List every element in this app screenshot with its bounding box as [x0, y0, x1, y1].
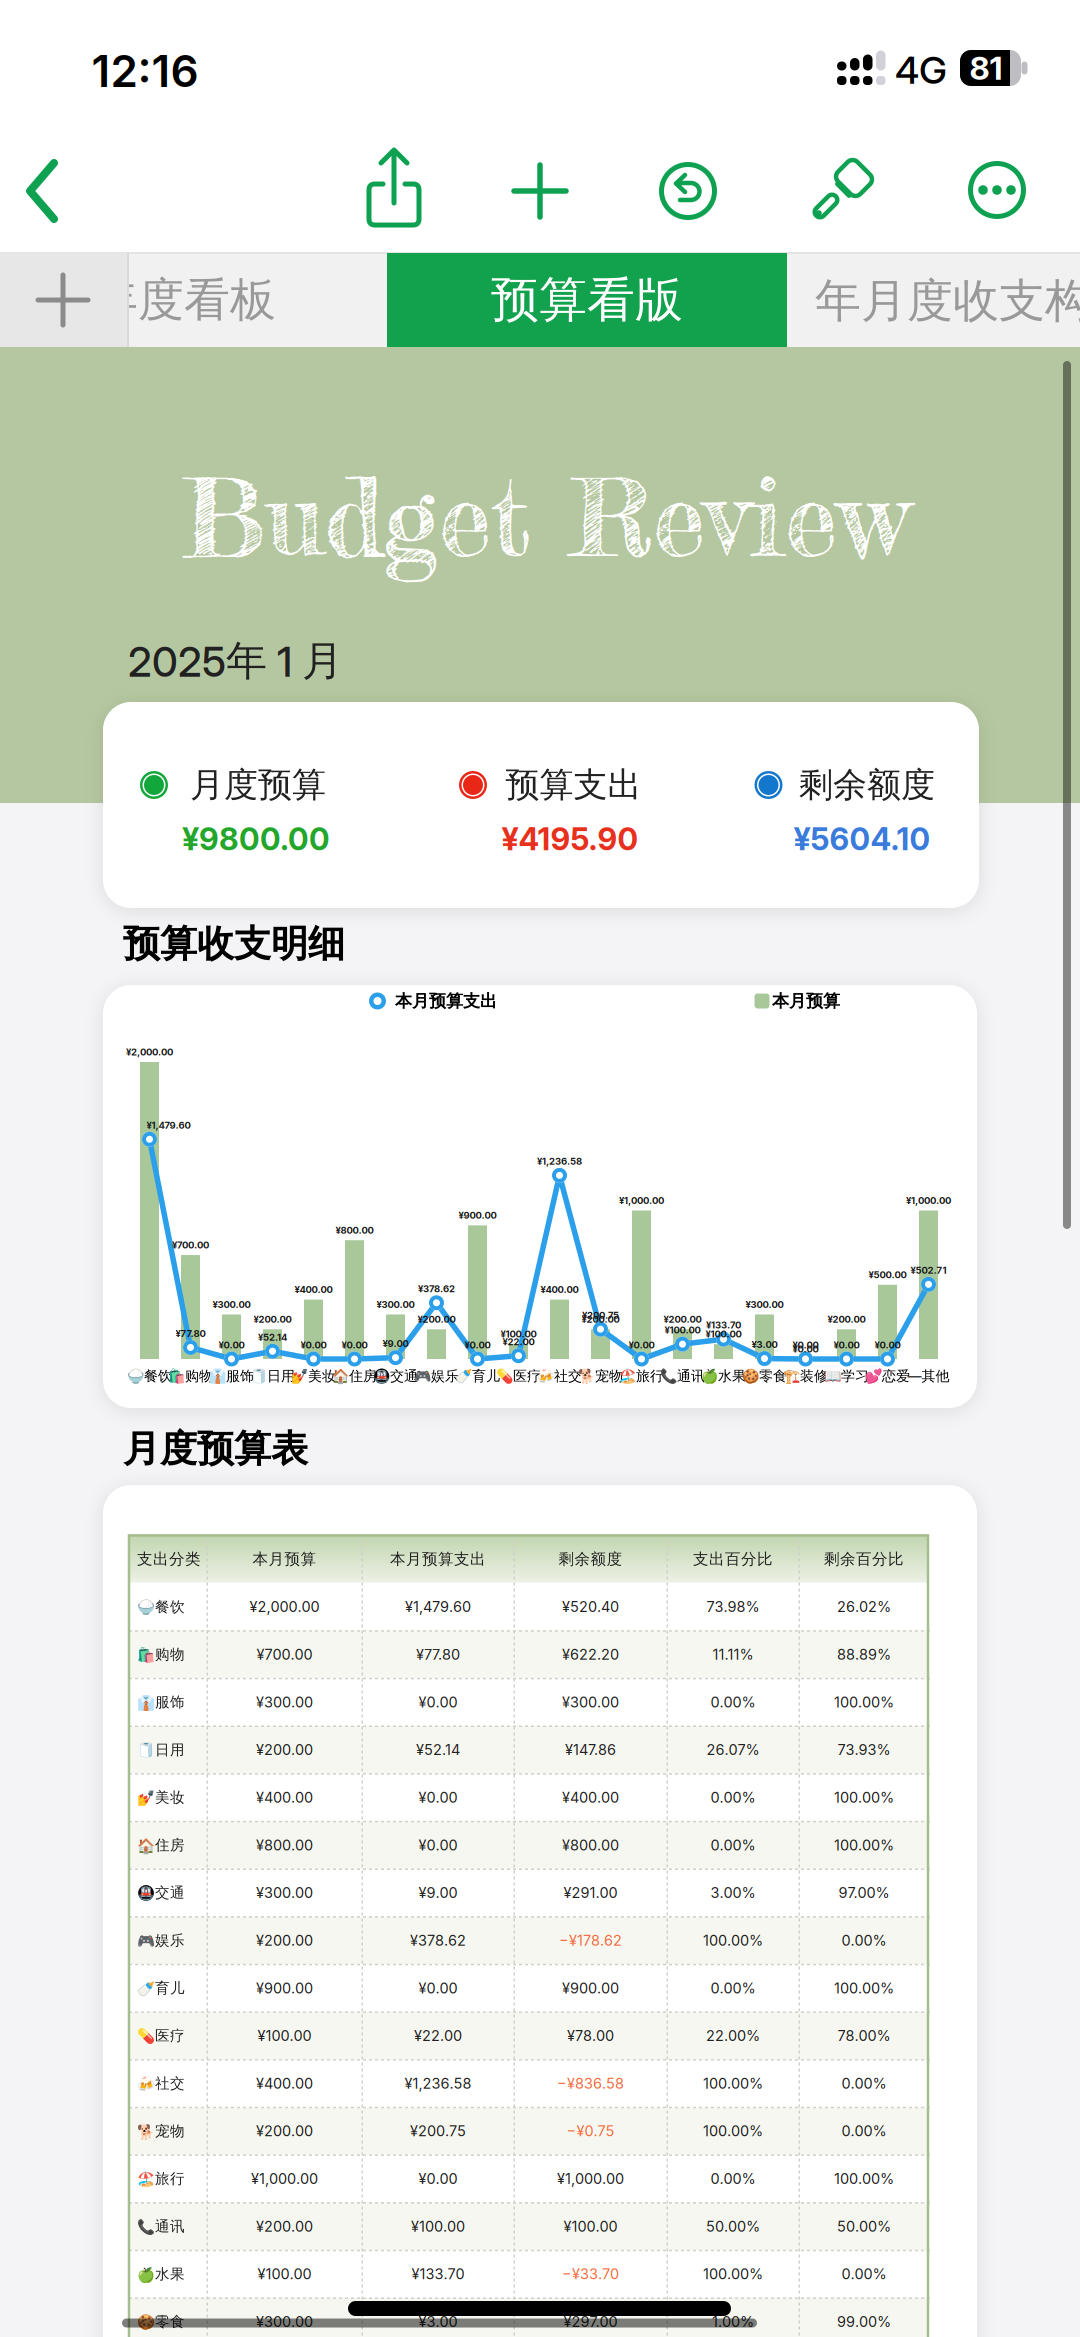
button[interactable]	[968, 161, 1026, 219]
button[interactable]	[811, 158, 875, 222]
staticText: ¥200.00	[256, 2218, 313, 2235]
staticText: 🍪零食	[742, 1367, 787, 1385]
staticText: 100.00%	[703, 1932, 763, 1949]
staticText: 剩余额度	[799, 764, 935, 806]
staticText: 剩余百分比	[824, 1549, 904, 1569]
staticText: 🚇交通	[373, 1367, 418, 1385]
staticText: ¥133.70	[411, 2265, 464, 2283]
staticText: 💅美妆	[291, 1367, 336, 1385]
button[interactable]	[659, 162, 717, 220]
staticText: ¥100.00	[563, 2218, 617, 2235]
staticText: ¥9.00	[418, 1884, 457, 1901]
staticText: ¥200.00	[827, 1314, 865, 1325]
staticText: —其他	[907, 1367, 949, 1385]
button[interactable]: 年度看板	[126, 253, 387, 347]
staticText: ¥400.00	[256, 1789, 313, 1806]
staticText: 3.00%	[710, 1884, 755, 1901]
staticText: ¥9.00	[382, 1338, 408, 1349]
staticText: 🛍️购物	[137, 1645, 185, 1664]
staticText: 81	[969, 49, 1002, 87]
staticText: ¥22.00	[414, 2027, 462, 2044]
staticText: ¥78.00	[567, 2027, 614, 2044]
staticText: 支出分类	[137, 1549, 201, 1569]
staticText: 50.00%	[837, 2218, 891, 2235]
staticText: 🧻日用	[250, 1367, 295, 1385]
staticText: ¥378.62	[418, 1283, 455, 1294]
staticText: 💊医疗	[496, 1367, 541, 1385]
staticText: 剩余额度	[558, 1549, 622, 1569]
staticText: 🧻日用	[137, 1741, 185, 1759]
staticText: ¥300.00	[212, 1299, 250, 1310]
staticText: ¥0.00	[418, 1693, 457, 1711]
staticText: 预算支出	[505, 764, 641, 806]
staticText: 🍏水果	[137, 2265, 185, 2283]
staticText: 预算收支明细	[123, 921, 345, 967]
staticText: ¥5604.10	[793, 820, 930, 858]
staticText: ¥800.00	[562, 1836, 619, 1854]
staticText: 🐕宠物	[137, 2122, 185, 2140]
staticText: 💊医疗	[137, 2027, 185, 2045]
button[interactable]	[0, 253, 127, 347]
staticText: ¥900.00	[458, 1210, 496, 1221]
staticText: 本月预算	[772, 990, 840, 1012]
button[interactable]	[510, 161, 570, 221]
staticText: 🏗️装修	[783, 1367, 828, 1385]
staticText: ¥100.00	[500, 1328, 536, 1340]
staticText: 0.00%	[710, 1836, 755, 1854]
staticText: ¥0.00	[792, 1339, 818, 1351]
staticText: 11.11%	[712, 1646, 753, 1663]
staticText: 🍪零食	[137, 2313, 185, 2331]
staticText: ¥1,479.60	[405, 1598, 471, 1616]
staticText: 73.98%	[706, 1598, 759, 1616]
staticText: 0.00%	[710, 2170, 755, 2187]
staticText: 📞通讯	[137, 2217, 185, 2236]
staticText: 12:16	[91, 44, 198, 98]
staticText: ¥900.00	[256, 1979, 313, 1997]
staticText: −¥33.70	[562, 2265, 619, 2283]
staticText: 🍚餐饮	[137, 1598, 185, 1616]
staticText: 22.00%	[706, 2027, 760, 2044]
staticText: 0.00%	[841, 1932, 886, 1949]
staticText: 年月度收支构	[815, 272, 1080, 330]
button[interactable]: 预算看版	[387, 253, 787, 347]
staticText: ¥200.75	[410, 2122, 466, 2140]
staticText: ¥520.40	[562, 1598, 619, 1616]
staticText: 🎮娱乐	[414, 1367, 459, 1385]
staticText: 本月预算	[252, 1549, 316, 1569]
staticText: 100.00%	[834, 1789, 894, 1806]
staticText: ¥147.86	[565, 1741, 616, 1758]
staticText: ¥22.00	[502, 1336, 534, 1347]
staticText: ¥200.00	[663, 1314, 701, 1325]
staticText: ¥0.00	[628, 1339, 654, 1351]
staticText: ¥291.00	[563, 1884, 617, 1901]
button[interactable]	[359, 146, 429, 230]
staticText: 50.00%	[706, 2218, 760, 2235]
staticText: ¥100.00	[705, 1328, 741, 1340]
staticText: ¥77.80	[175, 1328, 205, 1339]
staticText: 0.00%	[710, 1979, 755, 1997]
staticText: 🍏水果	[701, 1367, 746, 1385]
staticText: 99.00%	[837, 2313, 891, 2330]
staticText: ¥400.00	[256, 2075, 313, 2092]
button[interactable]	[18, 155, 74, 227]
staticText: ¥200.00	[256, 1741, 313, 1758]
staticText: ¥0.00	[418, 1836, 457, 1854]
staticText: −¥178.62	[559, 1932, 622, 1949]
staticText: 26.02%	[837, 1598, 891, 1616]
staticText: ¥300.00	[745, 1299, 783, 1310]
staticText: ¥52.14	[258, 1331, 287, 1343]
staticText: ¥400.00	[294, 1284, 332, 1295]
staticText: ¥0.00	[418, 2170, 457, 2187]
staticText: ¥0.00	[792, 1343, 818, 1355]
staticText: ¥200.00	[581, 1314, 619, 1325]
staticText: ¥500.00	[868, 1269, 906, 1280]
staticText: 💕恋爱	[865, 1367, 910, 1385]
staticText: 🏖️旅行	[619, 1367, 664, 1385]
staticText: ¥3.00	[751, 1339, 777, 1350]
staticText: ¥800.00	[335, 1224, 373, 1236]
staticText: 100.00%	[703, 2265, 763, 2283]
staticText: 🏖️旅行	[137, 2170, 185, 2188]
button[interactable]: 年月度收支构	[787, 253, 1080, 347]
staticText: 1.00%	[712, 2313, 754, 2330]
staticText: ¥0.00	[833, 1339, 859, 1351]
